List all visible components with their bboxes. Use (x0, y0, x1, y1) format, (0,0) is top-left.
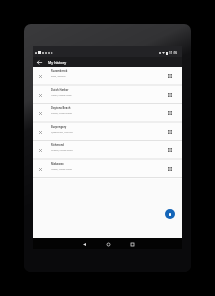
button[interactable]: Remove (36, 146, 45, 155)
button[interactable]: Remove (33, 67, 182, 86)
staticText: Florida, United States (51, 112, 73, 115)
staticText: Queensland, Australia (51, 131, 73, 134)
button[interactable]: Options (166, 128, 174, 136)
staticText: 11:16 (169, 51, 178, 55)
staticText: Makawao (51, 162, 64, 166)
button[interactable]: Remove (36, 109, 45, 118)
staticText: Burpengary (51, 125, 67, 129)
staticText: Dutch Harbor (51, 88, 69, 92)
staticText: My history (48, 60, 67, 65)
button[interactable]: Options (166, 109, 174, 117)
button[interactable]: Remove (36, 91, 45, 100)
staticText: Virginia, United States (51, 149, 73, 152)
button[interactable]: Options (166, 146, 174, 154)
button[interactable]: Add (165, 209, 175, 219)
button[interactable]: Back (35, 58, 44, 67)
button[interactable]: Remove (33, 123, 182, 142)
button[interactable]: Options (166, 91, 174, 99)
button[interactable]: Recents (130, 242, 134, 246)
button[interactable]: Home (106, 242, 110, 246)
staticText: Ruzomberok (51, 69, 68, 73)
button[interactable]: Remove (33, 86, 182, 105)
button[interactable]: Remove (33, 160, 182, 179)
button[interactable]: Remove (36, 72, 45, 81)
staticText: Alaska, United States (51, 94, 72, 97)
button[interactable]: Remove (36, 128, 45, 137)
staticText: Daytona Beach (51, 106, 71, 110)
button[interactable]: Options (166, 72, 174, 80)
button[interactable]: Remove (33, 141, 182, 160)
button[interactable]: Options (166, 165, 174, 173)
button[interactable]: Remove (36, 165, 45, 174)
staticText: Richmond (51, 143, 64, 147)
button[interactable]: Remove (33, 104, 182, 123)
staticText: Zilina, Slovakia (51, 75, 66, 78)
staticText: Hawaii, United States (51, 168, 72, 171)
button[interactable]: Back (82, 242, 86, 246)
